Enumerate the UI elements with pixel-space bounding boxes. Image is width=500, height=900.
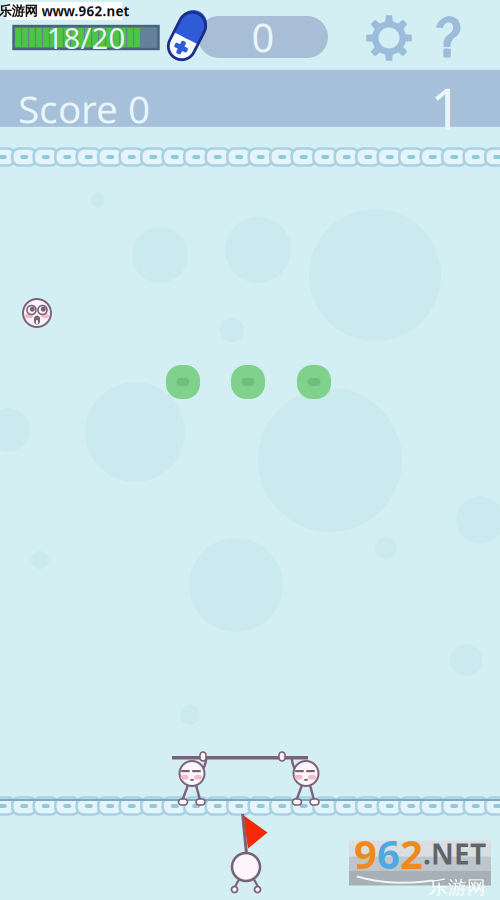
staticText: 乐游网 bbox=[0, 3, 37, 19]
staticText: 2 bbox=[400, 827, 423, 880]
button[interactable]: Settings bbox=[365, 14, 413, 62]
staticText: www.962.net bbox=[41, 2, 129, 20]
staticText: Score 0 bbox=[18, 83, 150, 134]
staticText: 6 bbox=[377, 827, 400, 880]
staticText: 9 bbox=[354, 827, 377, 880]
button[interactable]: 0 bbox=[198, 16, 328, 58]
button[interactable]: Help bbox=[432, 13, 466, 61]
staticText: 18/20 bbox=[46, 18, 125, 57]
staticText: .NET bbox=[423, 835, 486, 872]
staticText: 乐游网 bbox=[429, 876, 486, 899]
staticText: 0 bbox=[251, 10, 274, 63]
staticText: 1 bbox=[430, 71, 462, 145]
